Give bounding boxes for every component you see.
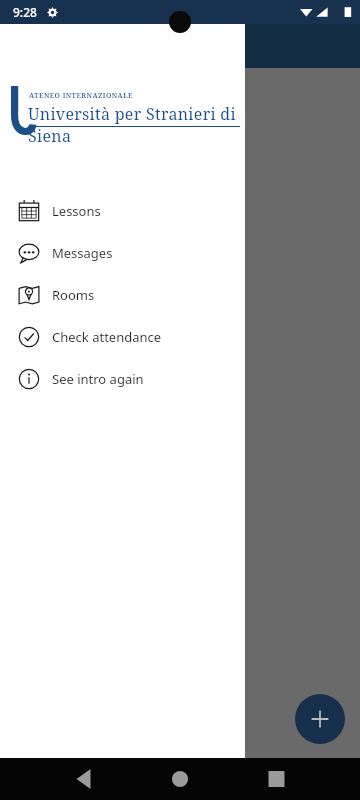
staticText: Messages (52, 244, 113, 262)
button[interactable]: Check attendance (0, 316, 245, 358)
button[interactable]: Lessons (0, 190, 245, 232)
button[interactable]: Rooms (0, 274, 245, 316)
staticText: Lessons (52, 202, 101, 220)
staticText: See intro again (52, 370, 144, 388)
staticText: ATENEO INTERNAZIONALE (29, 91, 133, 101)
button[interactable]: Messages (0, 232, 245, 274)
staticText: Università per Stranieri di Siena (28, 103, 273, 147)
staticText: Check attendance (52, 328, 162, 346)
button[interactable]: Add (295, 694, 345, 744)
button[interactable]: See intro again (0, 358, 245, 400)
staticText: Rooms (52, 286, 95, 304)
staticText: Here you can find all the consultation (16, 378, 226, 394)
staticText: 9:28 (13, 4, 37, 20)
